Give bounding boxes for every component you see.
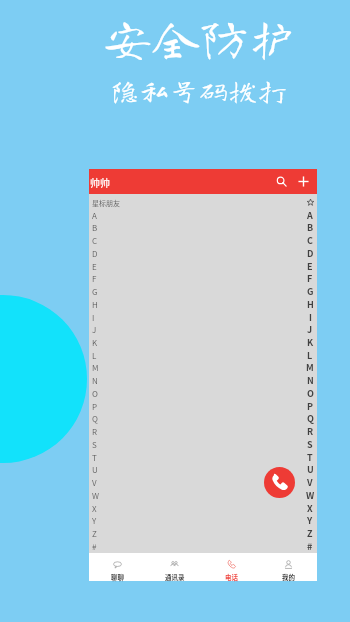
staticText: X xyxy=(92,503,97,515)
button[interactable]: J xyxy=(303,323,317,336)
button[interactable]: 星标朋友 xyxy=(89,196,317,209)
button[interactable]: F xyxy=(89,272,317,285)
staticText: D xyxy=(92,248,98,260)
staticText: 隐私号码拨打 xyxy=(111,76,289,104)
button[interactable]: H xyxy=(303,298,317,311)
button[interactable]: S xyxy=(303,438,317,451)
staticText: I xyxy=(309,311,312,324)
button[interactable]: T xyxy=(303,451,317,464)
button[interactable]: Q xyxy=(89,412,317,425)
button[interactable]: N xyxy=(303,374,317,387)
button[interactable]: V xyxy=(89,476,317,489)
button[interactable]: O xyxy=(303,387,317,400)
button[interactable]: P xyxy=(89,400,317,413)
staticText: Z xyxy=(92,528,97,540)
button[interactable]: N xyxy=(89,374,317,387)
button[interactable]: L xyxy=(303,349,317,362)
staticText: K xyxy=(92,337,98,349)
staticText: K xyxy=(307,336,314,349)
button[interactable]: 我的 xyxy=(260,554,317,581)
button[interactable]: X xyxy=(89,502,317,515)
button[interactable]: O xyxy=(89,387,317,400)
staticText: U xyxy=(307,463,314,476)
button[interactable]: 电话 xyxy=(203,554,260,581)
staticText: A xyxy=(307,209,313,222)
button[interactable]: F xyxy=(303,272,317,285)
staticText: M xyxy=(306,361,314,374)
button[interactable]: Z xyxy=(303,527,317,540)
staticText: E xyxy=(307,260,313,273)
staticText: N xyxy=(307,374,314,387)
staticText: # xyxy=(307,540,313,553)
button[interactable]: K xyxy=(89,336,317,349)
button[interactable]: B xyxy=(89,221,317,234)
staticText: H xyxy=(92,299,98,311)
button[interactable]: I xyxy=(89,311,317,324)
staticText: J xyxy=(307,323,313,336)
staticText: X xyxy=(307,502,313,515)
button[interactable]: E xyxy=(89,260,317,273)
button[interactable]: W xyxy=(303,489,317,502)
button[interactable]: A xyxy=(89,209,317,222)
button[interactable]: H xyxy=(89,298,317,311)
button[interactable]: S xyxy=(89,438,317,451)
button[interactable]: K xyxy=(303,336,317,349)
button[interactable]: Z xyxy=(89,527,317,540)
button[interactable]: Dial xyxy=(264,467,295,498)
button[interactable]: 通讯录 xyxy=(146,554,203,581)
staticText: R xyxy=(92,426,98,438)
button[interactable]: # xyxy=(89,540,317,553)
staticText: M xyxy=(92,362,99,374)
staticText: G xyxy=(92,286,98,298)
button[interactable]: J xyxy=(89,323,317,336)
staticText: S xyxy=(307,438,313,451)
staticText: O xyxy=(307,387,314,400)
button[interactable]: Search xyxy=(273,173,290,190)
button[interactable]: I xyxy=(303,311,317,324)
button[interactable]: D xyxy=(303,247,317,260)
staticText: 帅帅 xyxy=(90,175,110,189)
staticText: B xyxy=(307,221,314,234)
button[interactable]: R xyxy=(303,425,317,438)
button[interactable]: G xyxy=(89,285,317,298)
staticText: F xyxy=(307,272,313,285)
button[interactable]: 聊聊 xyxy=(89,554,146,581)
button[interactable]: R xyxy=(89,425,317,438)
button[interactable]: T xyxy=(89,451,317,464)
button[interactable]: Y xyxy=(89,514,317,527)
staticText: Q xyxy=(307,412,314,425)
button[interactable]: M xyxy=(303,361,317,374)
button[interactable]: # xyxy=(303,540,317,553)
button[interactable]: U xyxy=(303,463,317,476)
button[interactable]: W xyxy=(89,489,317,502)
button[interactable]: L xyxy=(89,349,317,362)
button[interactable]: D xyxy=(89,247,317,260)
staticText: F xyxy=(92,273,97,285)
staticText: 聊聊 xyxy=(111,572,124,581)
button[interactable]: M xyxy=(89,361,317,374)
button[interactable]: Y xyxy=(303,514,317,527)
button[interactable]: V xyxy=(303,476,317,489)
button[interactable]: C xyxy=(89,234,317,247)
button[interactable]: U xyxy=(89,463,317,476)
staticText: V xyxy=(307,476,313,489)
staticText: W xyxy=(92,490,100,502)
button[interactable]: G xyxy=(303,285,317,298)
staticText: O xyxy=(92,388,98,400)
staticText: I xyxy=(92,312,95,324)
staticText: T xyxy=(307,451,313,464)
button[interactable]: X xyxy=(303,502,317,515)
staticText: 我的 xyxy=(282,572,295,581)
staticText: A xyxy=(92,210,97,222)
button[interactable]: E xyxy=(303,260,317,273)
button[interactable]: Add xyxy=(295,173,312,190)
button[interactable]: A xyxy=(303,209,317,222)
button[interactable]: P xyxy=(303,400,317,413)
button[interactable]: Starred xyxy=(303,196,317,209)
staticText: Q xyxy=(92,413,98,425)
staticText: 通讯录 xyxy=(165,572,185,581)
button[interactable]: C xyxy=(303,234,317,247)
button[interactable]: B xyxy=(303,221,317,234)
button[interactable]: Q xyxy=(303,412,317,425)
staticText: C xyxy=(307,234,313,247)
